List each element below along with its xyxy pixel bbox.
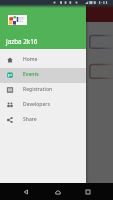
button[interactable]: Home — [49, 183, 66, 200]
button[interactable]: Events — [0, 68, 86, 83]
staticText: Events — [23, 71, 39, 78]
button[interactable]: Registration — [0, 83, 86, 98]
button[interactable]: Recent apps — [79, 183, 96, 200]
staticText: Registration — [23, 86, 53, 93]
staticText: Home — [23, 56, 38, 63]
button[interactable]: Back — [17, 183, 34, 200]
button[interactable] — [89, 64, 113, 79]
staticText: Share — [23, 116, 37, 123]
staticText: Developers — [23, 101, 50, 108]
button[interactable]: Share — [0, 113, 86, 128]
staticText: Jazba 2k16 — [6, 37, 38, 46]
button[interactable]: Home — [0, 53, 86, 68]
button[interactable]: Developers — [0, 98, 86, 113]
button[interactable] — [89, 35, 113, 49]
